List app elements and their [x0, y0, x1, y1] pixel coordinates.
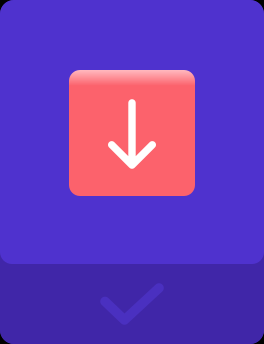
button[interactable]: Confirm	[0, 264, 264, 344]
button[interactable]: Download	[69, 70, 195, 196]
